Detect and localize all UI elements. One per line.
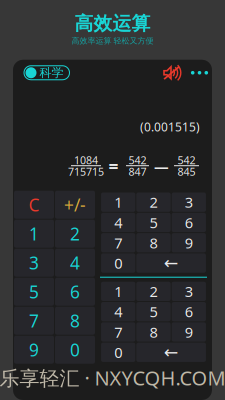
staticText: 9 [29, 338, 39, 361]
staticText: 0 [70, 338, 80, 361]
button[interactable]: 2 [55, 220, 95, 248]
staticText: 2 [149, 192, 157, 212]
button[interactable]: 3 [172, 282, 206, 301]
button[interactable]: 科学 [24, 66, 69, 80]
button[interactable]: 0 [101, 343, 135, 362]
button[interactable]: 9 [172, 322, 206, 342]
button[interactable]: 8 [136, 233, 171, 252]
button[interactable]: 4 [101, 302, 135, 321]
staticText: 8 [70, 309, 80, 332]
staticText: ← [164, 342, 179, 362]
staticText: 7 [29, 309, 39, 332]
staticText: 3 [185, 282, 193, 301]
button[interactable]: 6 [172, 213, 206, 232]
staticText: 2 [149, 282, 157, 301]
staticText: 6 [185, 302, 193, 321]
button[interactable]: 1 [101, 192, 135, 212]
staticText: 5 [149, 213, 157, 232]
button[interactable]: 4 [101, 213, 135, 232]
button[interactable]: 0 [101, 253, 135, 273]
button[interactable]: 8 [55, 307, 95, 335]
staticText: 3 [29, 251, 39, 274]
staticText: 9 [185, 322, 193, 342]
staticText: 845 [177, 165, 195, 179]
staticText: 1 [29, 222, 39, 245]
button[interactable]: 5 [14, 278, 54, 306]
staticText: 8 [149, 322, 157, 342]
button[interactable]: 4 [55, 249, 95, 277]
staticText: 4 [114, 213, 122, 232]
button[interactable]: 6 [55, 278, 95, 306]
staticText: 2 [70, 222, 80, 245]
button[interactable]: 5 [136, 213, 171, 232]
button[interactable]: More [193, 66, 206, 80]
button[interactable]: 9 [172, 233, 206, 252]
staticText: 7 [114, 233, 122, 252]
staticText: 0 [114, 253, 122, 273]
staticText: 3 [185, 192, 193, 212]
staticText: (0.001515) [140, 119, 200, 135]
staticText: +/- [64, 193, 86, 216]
button[interactable]: 2 [136, 192, 171, 212]
staticText: 0 [114, 342, 122, 362]
staticText: 715715 [68, 165, 104, 179]
button[interactable]: C [14, 191, 54, 219]
button[interactable]: 2 [136, 282, 171, 301]
button[interactable]: 7 [101, 233, 135, 252]
button[interactable]: 7 [14, 307, 54, 335]
staticText: — [154, 156, 169, 176]
button[interactable]: 8 [136, 322, 171, 342]
staticText: 542 [128, 153, 146, 167]
button[interactable]: 6 [172, 302, 206, 321]
button[interactable]: 7 [101, 322, 135, 342]
staticText: 8 [149, 233, 157, 252]
button[interactable]: 5 [136, 302, 171, 321]
staticText: 7 [114, 322, 122, 342]
staticText: 1084 [74, 153, 98, 167]
button[interactable]: ← [136, 343, 206, 362]
staticText: 542 [177, 153, 195, 167]
staticText: 6 [70, 280, 80, 303]
staticText: 科学 [39, 65, 63, 80]
staticText: 4 [70, 251, 80, 274]
staticText: 乐享轻汇 · NXYCQH.COM [0, 364, 225, 391]
button[interactable]: 1 [14, 220, 54, 248]
button[interactable]: ← [136, 253, 206, 273]
staticText: 5 [149, 302, 157, 321]
button[interactable]: 0 [55, 336, 95, 364]
staticText: 1 [114, 282, 122, 301]
staticText: C [28, 193, 39, 216]
staticText: 5 [29, 280, 39, 303]
staticText: 9 [185, 233, 193, 252]
button[interactable]: 3 [172, 192, 206, 212]
button[interactable]: +/- [55, 191, 95, 219]
staticText: 高效运算 [74, 12, 150, 35]
button[interactable]: Mute [163, 66, 182, 80]
button[interactable]: 3 [14, 249, 54, 277]
staticText: ← [164, 253, 179, 273]
staticText: 4 [114, 302, 122, 321]
button[interactable]: 1 [101, 282, 135, 301]
button[interactable]: 9 [14, 336, 54, 364]
staticText: = [108, 155, 118, 178]
staticText: 1 [114, 192, 122, 212]
staticText: 6 [185, 213, 193, 232]
staticText: 高效率运算 轻松又方便 [71, 36, 153, 46]
staticText: 847 [128, 165, 146, 179]
